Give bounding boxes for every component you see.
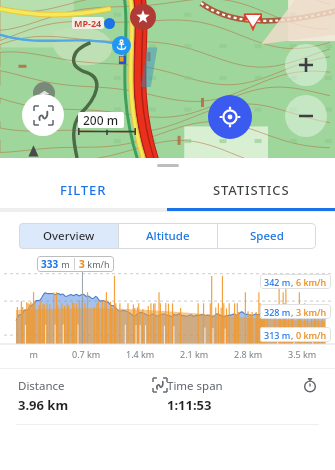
staticText: FILTER bbox=[60, 181, 107, 199]
staticText: , bbox=[291, 306, 296, 318]
staticText: Altitude bbox=[146, 228, 190, 244]
button[interactable]: FILTER bbox=[0, 172, 167, 208]
staticText: , bbox=[291, 276, 296, 288]
button[interactable]: Track bbox=[22, 94, 64, 136]
staticText: 3 km/h bbox=[296, 306, 327, 318]
staticText: Speed bbox=[250, 228, 284, 244]
staticText: 342 m bbox=[264, 276, 291, 288]
staticText: 3.96 km bbox=[18, 396, 69, 414]
other: Distance bbox=[153, 378, 167, 392]
button[interactable]: Distance bbox=[18, 378, 167, 414]
staticText: MP-24 bbox=[74, 17, 102, 29]
staticText: 3.5 km bbox=[288, 348, 317, 360]
button[interactable]: Anchor point bbox=[112, 36, 131, 55]
staticText: 2.8 km bbox=[234, 348, 263, 360]
button[interactable]: Speed bbox=[218, 223, 316, 249]
button[interactable]: STATISTICS bbox=[167, 172, 335, 208]
button[interactable]: Layers bbox=[33, 82, 55, 104]
button[interactable]: Overview bbox=[19, 223, 118, 249]
staticText: , bbox=[291, 329, 296, 341]
button[interactable]: Time span bbox=[167, 378, 317, 414]
staticText: 0.7 km bbox=[72, 348, 101, 360]
button[interactable]: Zoom out bbox=[285, 95, 327, 137]
staticText: m bbox=[59, 258, 70, 270]
staticText: 333 bbox=[41, 257, 59, 271]
staticText: STATISTICS bbox=[213, 181, 290, 199]
staticText: 1.4 km bbox=[126, 348, 155, 360]
staticText: km/h bbox=[85, 258, 110, 270]
staticText: 200 m bbox=[83, 112, 119, 128]
staticText: 2.1 km bbox=[180, 348, 209, 360]
staticText: 0 km/h bbox=[296, 329, 327, 341]
staticText: 1:11:53 bbox=[167, 396, 212, 414]
other: Time span bbox=[303, 378, 317, 392]
staticText: 328 m bbox=[264, 306, 291, 318]
staticText: 3 bbox=[79, 257, 85, 271]
staticText: 313 m bbox=[264, 329, 291, 341]
button[interactable]: Altitude bbox=[119, 223, 217, 249]
button[interactable]: My location bbox=[208, 95, 252, 139]
staticText: m bbox=[28, 348, 38, 360]
button[interactable]: Zoom in bbox=[285, 44, 327, 86]
staticText: Time span bbox=[167, 378, 223, 394]
staticText: Overview bbox=[43, 228, 95, 244]
button[interactable]: Favourite place bbox=[130, 4, 156, 30]
staticText: Distance bbox=[18, 378, 65, 394]
staticText: 6 km/h bbox=[296, 276, 327, 288]
